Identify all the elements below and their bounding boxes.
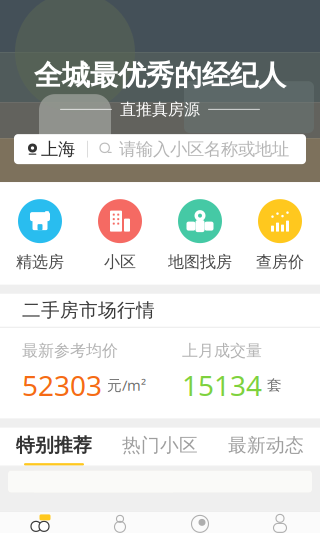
button[interactable]: 上海 <box>14 134 87 164</box>
button[interactable]: 热门小区 <box>107 428 213 466</box>
staticText: 元/m² <box>107 375 146 395</box>
button[interactable]: 小区 <box>80 199 160 272</box>
staticText: 52303 <box>22 366 102 404</box>
button[interactable]: 精选房 <box>0 199 80 272</box>
button[interactable]: 我 <box>240 512 320 533</box>
staticText: 精选房 <box>16 252 64 272</box>
button[interactable]: 查房价 <box>240 199 320 272</box>
staticText: 小区 <box>104 252 136 272</box>
button[interactable]: 经纪人 <box>80 512 160 533</box>
staticText: 套 <box>267 376 282 394</box>
staticText: 查房价 <box>256 252 304 272</box>
staticText: 地图找房 <box>168 252 232 272</box>
button[interactable]: 地图找房 <box>160 199 240 272</box>
staticText: 最新动态 <box>228 434 304 457</box>
button[interactable]: 首页 <box>0 512 80 533</box>
staticText: 15134 <box>182 366 262 404</box>
button[interactable]: 特别推荐 <box>1 428 107 466</box>
staticText: 二手房市场行情 <box>22 299 155 322</box>
staticText: 上海 <box>41 138 75 160</box>
staticText: 特别推荐 <box>16 434 92 457</box>
staticText: 热门小区 <box>122 434 198 457</box>
staticText: 直推真房源 <box>120 99 200 119</box>
staticText: 全城最优秀的经纪人 <box>34 58 286 92</box>
button[interactable]: 最新动态 <box>213 428 319 466</box>
button[interactable]: 发现 <box>160 512 240 533</box>
button[interactable]: 请输入小区名称或地址 <box>88 134 306 164</box>
staticText: 最新参考均价 <box>22 341 118 360</box>
staticText: 请输入小区名称或地址 <box>119 138 289 160</box>
staticText: 上月成交量 <box>182 341 262 360</box>
